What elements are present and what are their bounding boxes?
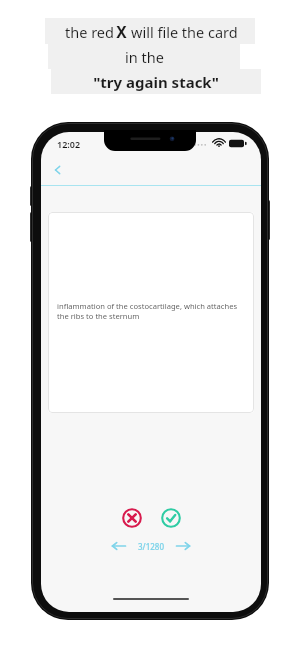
button[interactable]: Correct: [158, 505, 184, 531]
staticText: "try again stack": [93, 72, 219, 92]
staticText: will file the card: [127, 22, 238, 42]
button[interactable]: Wrong, try again stack: [119, 505, 145, 531]
staticText: inflammation of the costocartilage, whic…: [57, 301, 239, 321]
staticText: 12:02: [57, 138, 81, 150]
staticText: the red: [63, 22, 116, 42]
staticText: X: [116, 21, 127, 42]
staticText: 3/1280: [138, 541, 164, 552]
button[interactable]: Next card: [170, 536, 196, 556]
staticText: in the: [125, 47, 164, 67]
button[interactable]: Back: [41, 156, 75, 184]
button[interactable]: inflammation of the costocartilage, whic…: [48, 212, 254, 413]
button[interactable]: Previous card: [106, 536, 132, 556]
